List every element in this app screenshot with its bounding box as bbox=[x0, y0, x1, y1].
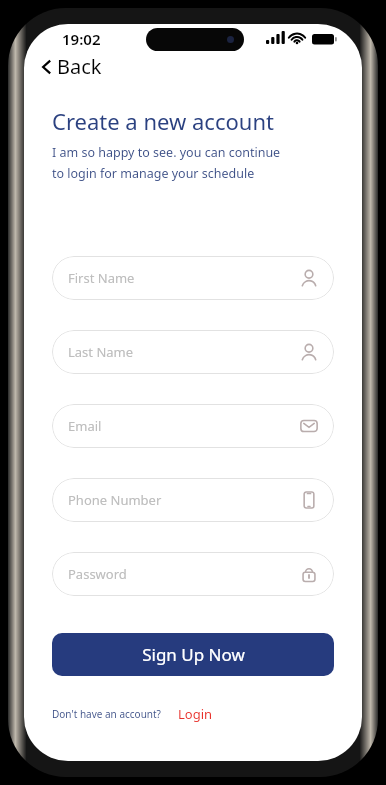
staticText: Phone Number bbox=[68, 491, 298, 509]
button[interactable]: Phone Number bbox=[52, 478, 334, 522]
button[interactable]: Login bbox=[178, 705, 213, 723]
staticText: Back bbox=[57, 53, 102, 80]
button[interactable]: Don't have an account? bbox=[52, 707, 161, 721]
button[interactable]: Sign Up Now bbox=[52, 633, 334, 676]
staticText: I am so happy to see. you can continue t… bbox=[52, 144, 281, 181]
staticText: Password bbox=[68, 565, 298, 583]
button[interactable]: Back bbox=[36, 51, 106, 82]
staticText: Create a new account bbox=[52, 106, 274, 136]
staticText: Login bbox=[178, 705, 213, 723]
button[interactable]: Email bbox=[52, 404, 334, 448]
button[interactable]: First Name bbox=[52, 256, 334, 300]
staticText: Sign Up Now bbox=[142, 643, 245, 666]
staticText: 19:02 bbox=[62, 29, 101, 49]
staticText: Last Name bbox=[68, 343, 298, 361]
button[interactable]: Password bbox=[52, 552, 334, 596]
staticText: Email bbox=[68, 417, 298, 435]
staticText: First Name bbox=[68, 269, 298, 287]
button[interactable]: Last Name bbox=[52, 330, 334, 374]
